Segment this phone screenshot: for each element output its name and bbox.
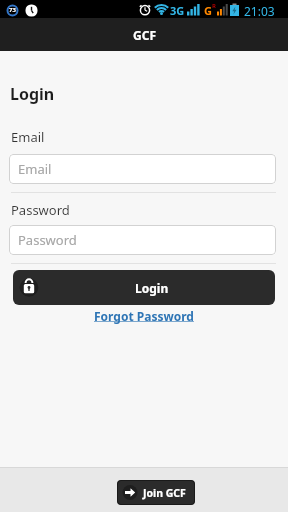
button[interactable]: Email [9,154,276,184]
staticText: GCF [133,27,156,43]
staticText: 3G [170,3,185,18]
staticText: Password [11,201,70,219]
staticText: Email [18,160,52,178]
staticText: Login [10,83,55,105]
button[interactable]: Password [9,225,276,255]
staticText: R [212,2,216,10]
staticText: Email [11,128,45,146]
staticText: Password [18,231,77,249]
button[interactable]: Login [13,270,275,305]
button[interactable]: Forgot Password [94,308,194,324]
staticText: Join GCF [143,486,186,500]
staticText: 73 [9,6,16,14]
button[interactable]: Join GCF [117,480,195,505]
staticText: Login [135,280,169,296]
staticText: G [204,3,212,18]
staticText: 21:03 [244,3,275,19]
